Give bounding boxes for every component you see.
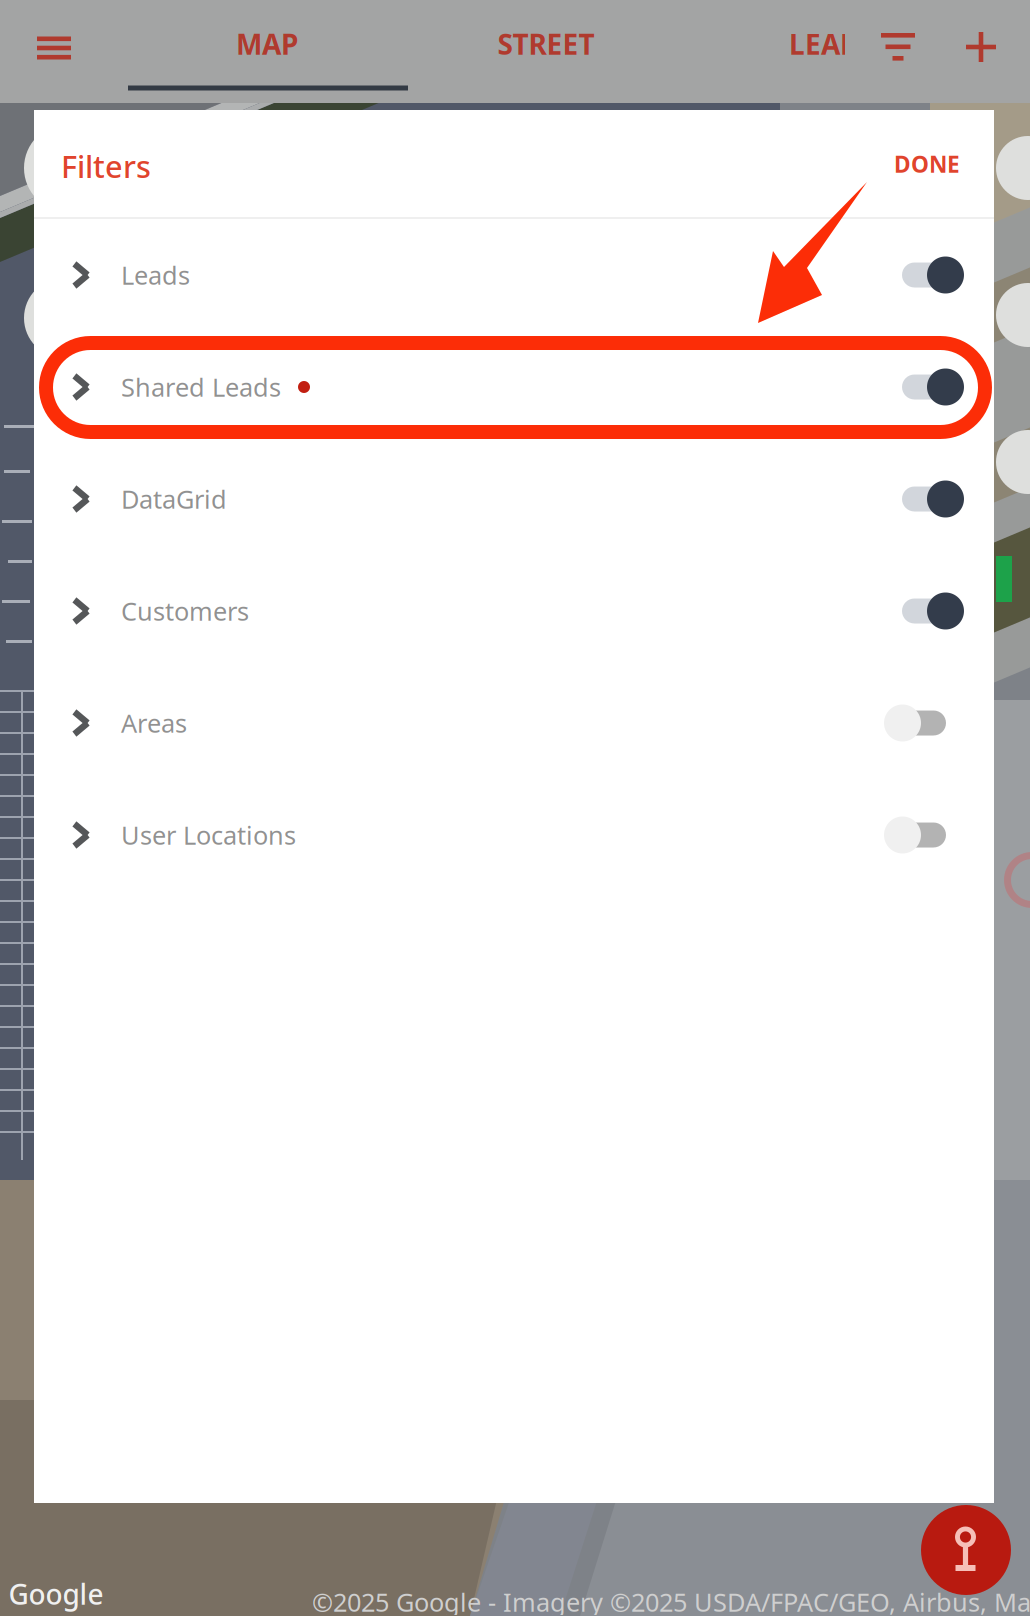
staticText: MAP (236, 25, 298, 63)
staticText: Shared Leads (121, 370, 281, 404)
button[interactable]: MAP (127, 1, 407, 87)
button[interactable]: Leads (34, 219, 994, 331)
button[interactable]: LEADS (789, 1, 845, 87)
button[interactable]: Shared Leads (34, 331, 994, 443)
staticText: Leads (121, 258, 190, 292)
staticText: STREET (497, 25, 594, 63)
button[interactable]: User Locations (34, 779, 994, 891)
staticText: LEADS (789, 25, 875, 63)
button[interactable]: Filter (863, 15, 933, 79)
button[interactable]: DataGrid (34, 443, 994, 555)
staticText: User Locations (121, 818, 296, 852)
staticText: ©2025 Google - Imagery ©2025 USDA/FPAC/G… (312, 1585, 1030, 1616)
button[interactable]: Add (948, 14, 1014, 80)
staticText: Areas (121, 706, 187, 740)
staticText: DONE (894, 149, 960, 179)
staticText: Google (8, 1575, 103, 1613)
staticText: DataGrid (121, 482, 227, 516)
staticText: Filters (61, 146, 151, 186)
button[interactable]: Areas (34, 667, 994, 779)
staticText: Customers (121, 594, 249, 628)
button[interactable]: DONE (867, 132, 987, 196)
button[interactable]: Drop pin (921, 1505, 1011, 1595)
button[interactable]: Menu (15, 14, 93, 81)
button[interactable]: STREET (426, 1, 666, 87)
button[interactable]: Customers (34, 555, 994, 667)
